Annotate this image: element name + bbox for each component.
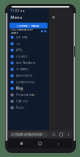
button[interactable]: Tabs [60,133,63,136]
staticText: CLI [16,42,20,45]
button[interactable]: Components [8,79,49,85]
staticText: CONNECT WALLET [17,24,40,27]
button[interactable]: Recent apps [16,138,26,148]
staticText: Cash out [16,99,28,103]
staticText: DOCUMENTATION LINKS [11,28,33,35]
button[interactable]: CONNECT WALLET [9,23,48,28]
button[interactable]: Cash out [8,98,49,104]
button[interactable]: Rules [8,104,49,111]
staticText: Line Numbers [16,61,35,65]
staticText: Live Data [16,35,27,39]
staticText: ‹ [57,140,59,147]
button[interactable]: More options [67,132,70,137]
staticText: 11:03 [10,9,19,13]
button[interactable]: Profile [52,133,56,136]
button[interactable]: Screenshots [8,72,49,79]
button[interactable]: APIs [8,47,49,53]
button[interactable]: Line Numbers [8,60,49,66]
button[interactable]: dcdart.com/products [10,132,48,137]
staticText: ✕ [52,15,55,19]
button[interactable]: Personal data [8,92,49,98]
staticText: Components [16,80,34,84]
button[interactable]: Cookies [8,53,49,60]
staticText: TV Names [16,67,28,71]
staticText: Blog [16,87,23,90]
button[interactable]: Close menu [50,14,56,20]
staticText: Rules [16,106,24,109]
staticText: Screenshots [16,74,32,77]
button[interactable]: TV Names [8,66,49,72]
staticText: dcdart.com/products [15,133,42,136]
button[interactable]: Home [35,138,45,148]
staticText: APIs [16,48,22,52]
button[interactable]: Live Data [8,34,49,40]
staticText: Personal data [16,93,34,97]
button[interactable]: Blog [8,85,49,92]
staticText: Menu [11,15,23,20]
button[interactable]: Back [53,138,63,148]
staticText: Cookies [16,55,27,58]
button[interactable]: CLI [8,40,49,47]
